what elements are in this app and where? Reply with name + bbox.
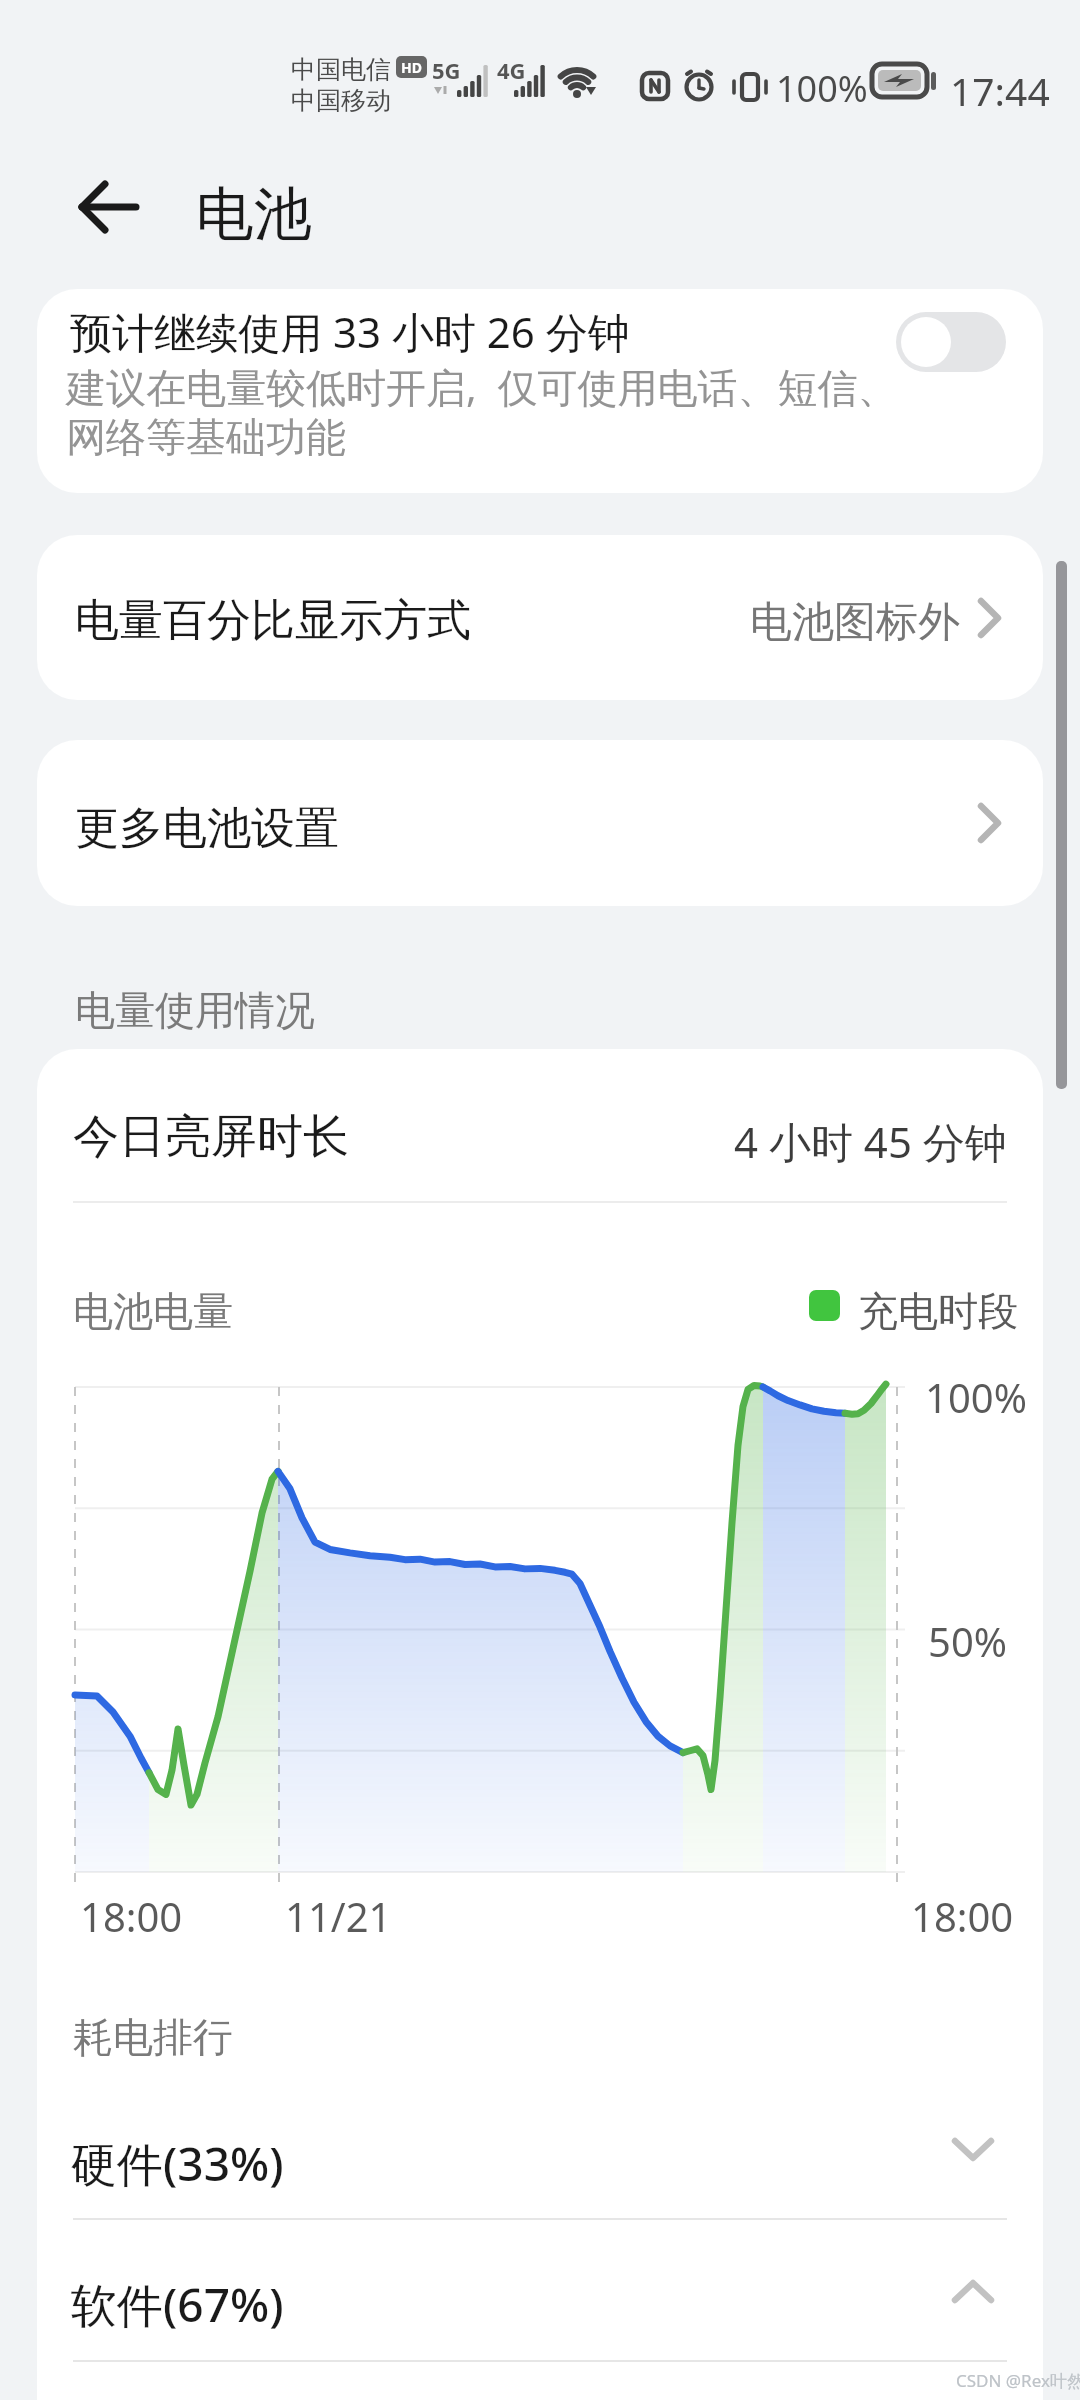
staticText: 18:00 — [911, 1889, 1014, 1943]
button[interactable]: 更多电池设置 — [37, 740, 1043, 906]
button[interactable]: 软件(67%) — [37, 2244, 1043, 2344]
staticText: HD — [401, 58, 422, 77]
staticText: 电池图标外 — [750, 596, 960, 649]
staticText: 耗电排行 — [73, 2012, 233, 2062]
staticText: 17:44 — [950, 64, 1050, 117]
staticText: 充电时段 — [858, 1286, 1018, 1336]
staticText: 更多电池设置 — [75, 801, 339, 856]
staticText: 11/21 — [285, 1889, 392, 1943]
staticText: 电池电量 — [73, 1286, 233, 1336]
staticText: CSDN @Rex叶然 — [956, 2369, 1080, 2392]
staticText: 预计继续使用 33 小时 26 分钟 — [70, 303, 630, 360]
staticText: 电量使用情况 — [75, 985, 315, 1035]
button[interactable] — [896, 312, 1006, 372]
staticText: 今日亮屏时长 — [73, 1108, 349, 1166]
staticText: 中国电信 — [291, 54, 391, 85]
staticText: 50% — [928, 1614, 1007, 1668]
staticText: 100% — [776, 64, 868, 113]
staticText: 电池 — [196, 178, 312, 251]
button[interactable] — [68, 169, 150, 245]
staticText: 5G — [432, 55, 461, 85]
staticText: 建议在电量较低时开启, 仅可使用电话、短信、 网络等基础功能 — [66, 359, 898, 463]
staticText: 4G — [497, 55, 526, 85]
staticText: 中国移动 — [291, 85, 391, 116]
staticText: 4 小时 45 分钟 — [734, 1113, 1007, 1170]
staticText: 18:00 — [80, 1889, 183, 1943]
staticText: 100% — [925, 1370, 1027, 1424]
staticText: 硬件(33%) — [71, 2132, 284, 2195]
staticText: 软件(67%) — [71, 2273, 284, 2336]
button[interactable]: 预计继续使用 33 小时 26 分钟 — [37, 289, 1043, 493]
button[interactable]: 硬件(33%) — [37, 2099, 1043, 2199]
button[interactable]: 电量百分比显示方式 — [37, 535, 1043, 700]
staticText: 电量百分比显示方式 — [75, 593, 471, 648]
